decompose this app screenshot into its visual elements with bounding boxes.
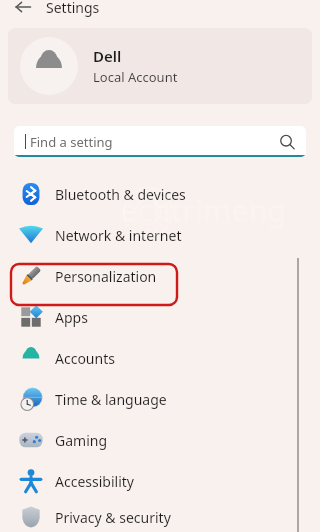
staticText: Find a setting [30, 133, 113, 151]
staticText: Time & language [55, 390, 167, 409]
staticText: Bluetooth & devices [55, 185, 186, 204]
staticText: Apps [55, 308, 88, 327]
button[interactable]: Dell [8, 28, 312, 104]
button[interactable]: Gaming [0, 419, 320, 460]
button[interactable]: Bluetooth & devices [0, 173, 320, 214]
staticText: Accounts [55, 349, 115, 368]
button[interactable]: Apps [0, 296, 320, 337]
staticText: Accessibility [55, 472, 134, 491]
button[interactable]: Time & language [0, 378, 320, 419]
button[interactable]: Network & internet [0, 214, 320, 255]
button[interactable]: Accounts [0, 337, 320, 378]
staticText: Gaming [55, 431, 108, 450]
button[interactable]: Accessibility [0, 460, 320, 501]
staticText: Dell [93, 46, 122, 66]
button[interactable]: Find a setting [14, 126, 306, 157]
staticText: echtrimeng [120, 190, 287, 231]
button[interactable]: Personalization [0, 255, 320, 296]
staticText: Settings [46, 0, 100, 17]
staticText: Privacy & security [55, 508, 171, 527]
staticText: Personalization [55, 267, 157, 286]
staticText: Local Account [93, 68, 178, 86]
button[interactable]: Privacy & security [0, 501, 320, 532]
staticText: Network & internet [55, 226, 182, 245]
button[interactable]: Back [8, 0, 38, 18]
